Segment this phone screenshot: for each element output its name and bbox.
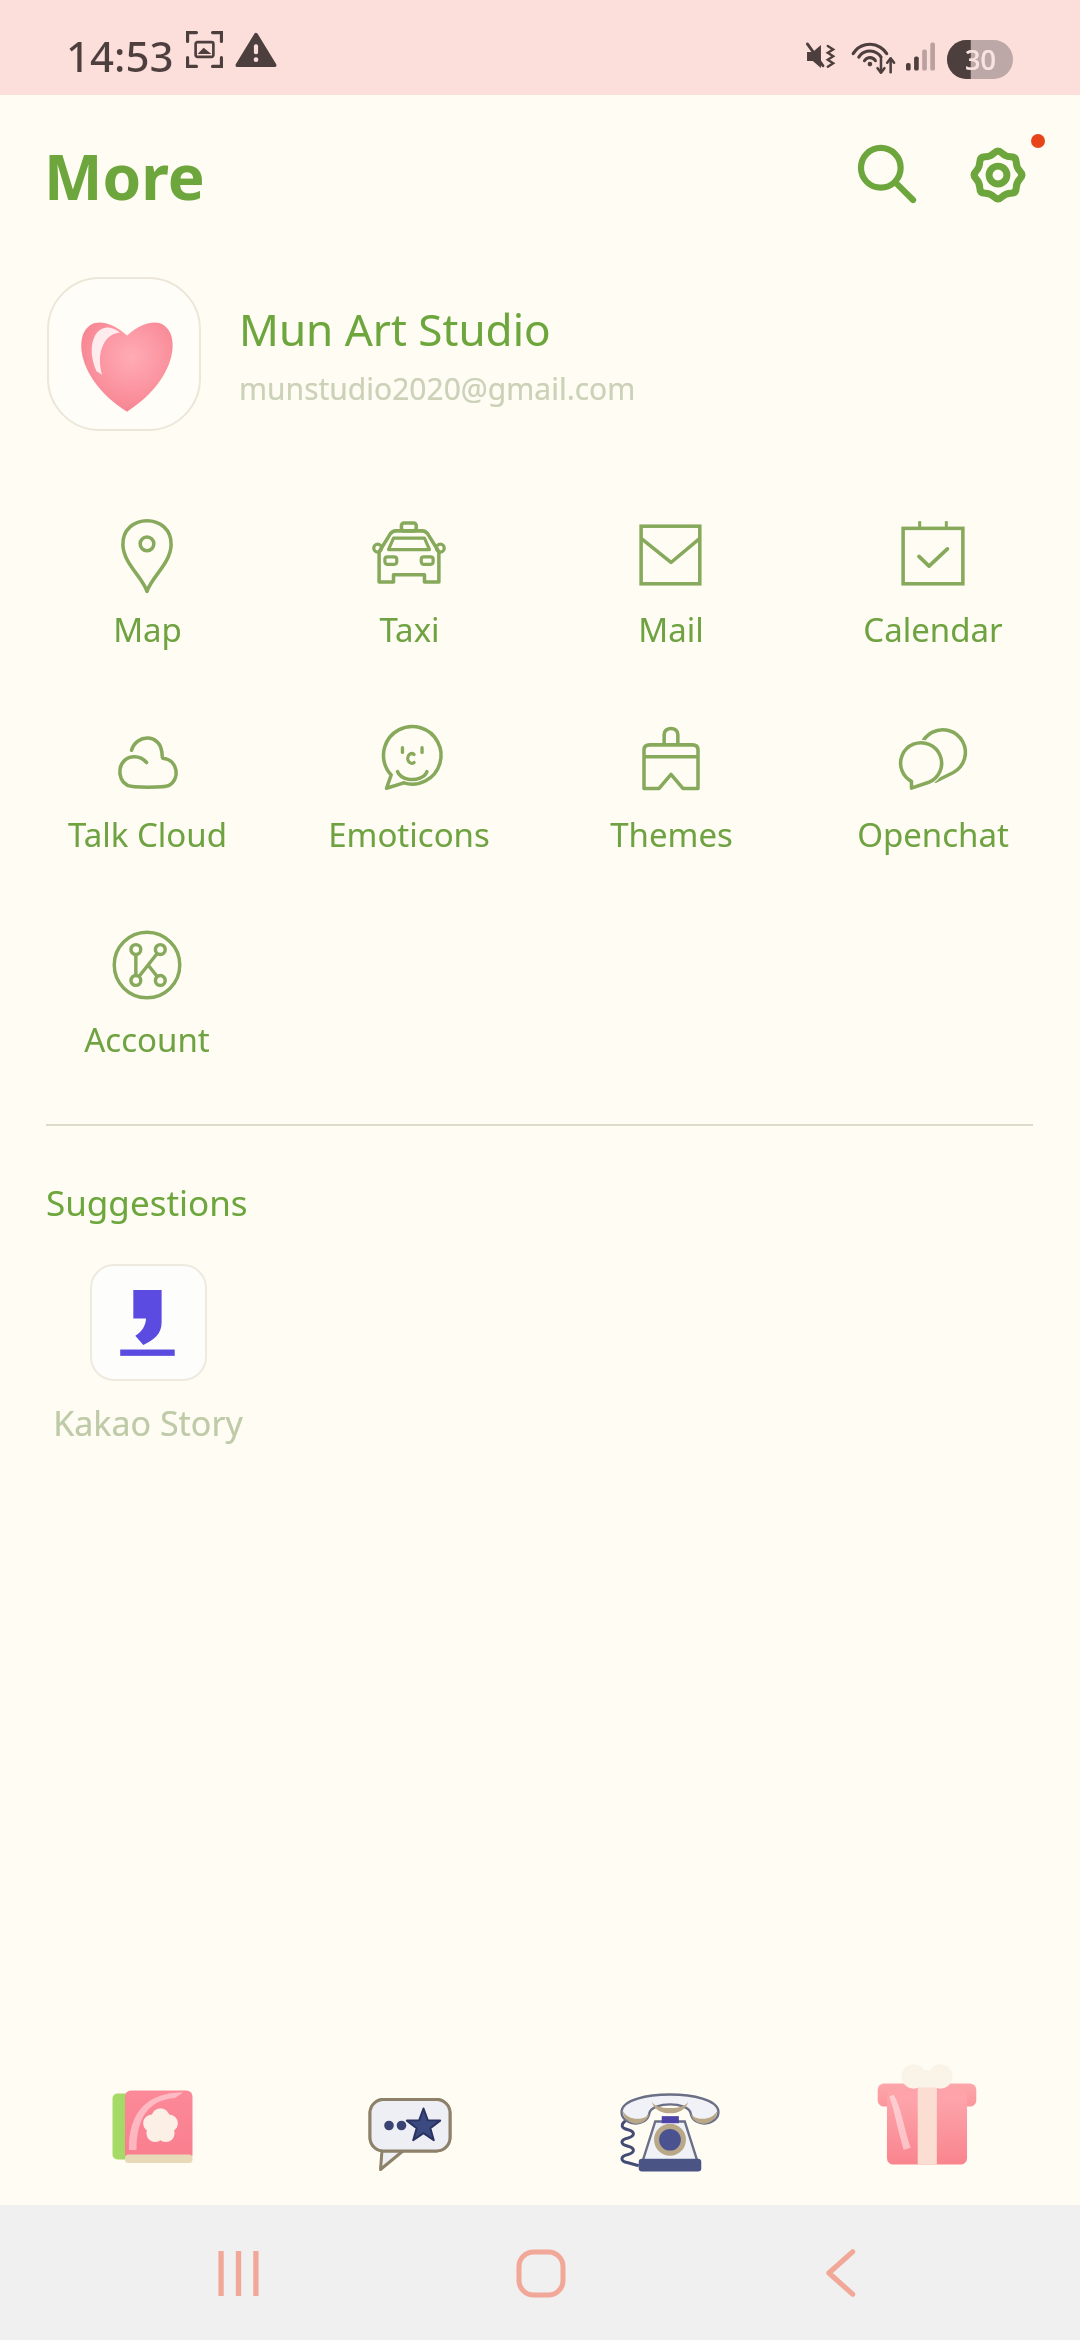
button[interactable]: Home — [491, 2228, 591, 2318]
button[interactable]: Mun Art Studio — [0, 265, 1080, 443]
button[interactable]: Openchat — [802, 700, 1064, 876]
staticText: Calendar — [863, 607, 1003, 652]
staticText: Account — [84, 1017, 210, 1062]
button[interactable]: Talk Cloud — [16, 700, 278, 876]
button[interactable]: Calls — [580, 2060, 760, 2200]
button[interactable]: Back — [790, 2228, 890, 2318]
staticText: munstudio2020@gmail.com — [239, 368, 636, 409]
button[interactable]: Recents — [188, 2228, 288, 2318]
staticText: 30 — [965, 41, 996, 78]
staticText: Taxi — [379, 607, 440, 652]
button[interactable]: Friends — [63, 2060, 243, 2200]
staticText: Talk Cloud — [68, 812, 227, 857]
staticText: More — [44, 134, 205, 218]
button[interactable]: Mail — [540, 495, 802, 671]
button[interactable]: Search — [836, 122, 936, 222]
button[interactable]: Account — [16, 905, 278, 1081]
button[interactable]: Taxi — [278, 495, 540, 671]
staticText: Openchat — [857, 812, 1009, 857]
staticText: Kakao Story — [53, 1400, 243, 1446]
staticText: Suggestions — [46, 1179, 248, 1227]
button[interactable]: Map — [16, 495, 278, 671]
button[interactable]: Emoticons — [278, 700, 540, 876]
staticText: Emoticons — [328, 812, 490, 857]
staticText: Map — [113, 607, 182, 652]
button[interactable]: Calendar — [802, 495, 1064, 671]
staticText: Mail — [638, 607, 704, 652]
staticText: 14:53 — [66, 27, 174, 84]
button[interactable]: Settings — [947, 122, 1047, 222]
button[interactable]: Themes — [540, 700, 802, 876]
staticText: Mun Art Studio — [239, 299, 551, 359]
button[interactable]: Shopping — [837, 2060, 1017, 2200]
button[interactable]: Kakao Story — [28, 1265, 268, 1446]
staticText: Themes — [610, 812, 733, 857]
button[interactable]: Chats — [319, 2060, 499, 2200]
